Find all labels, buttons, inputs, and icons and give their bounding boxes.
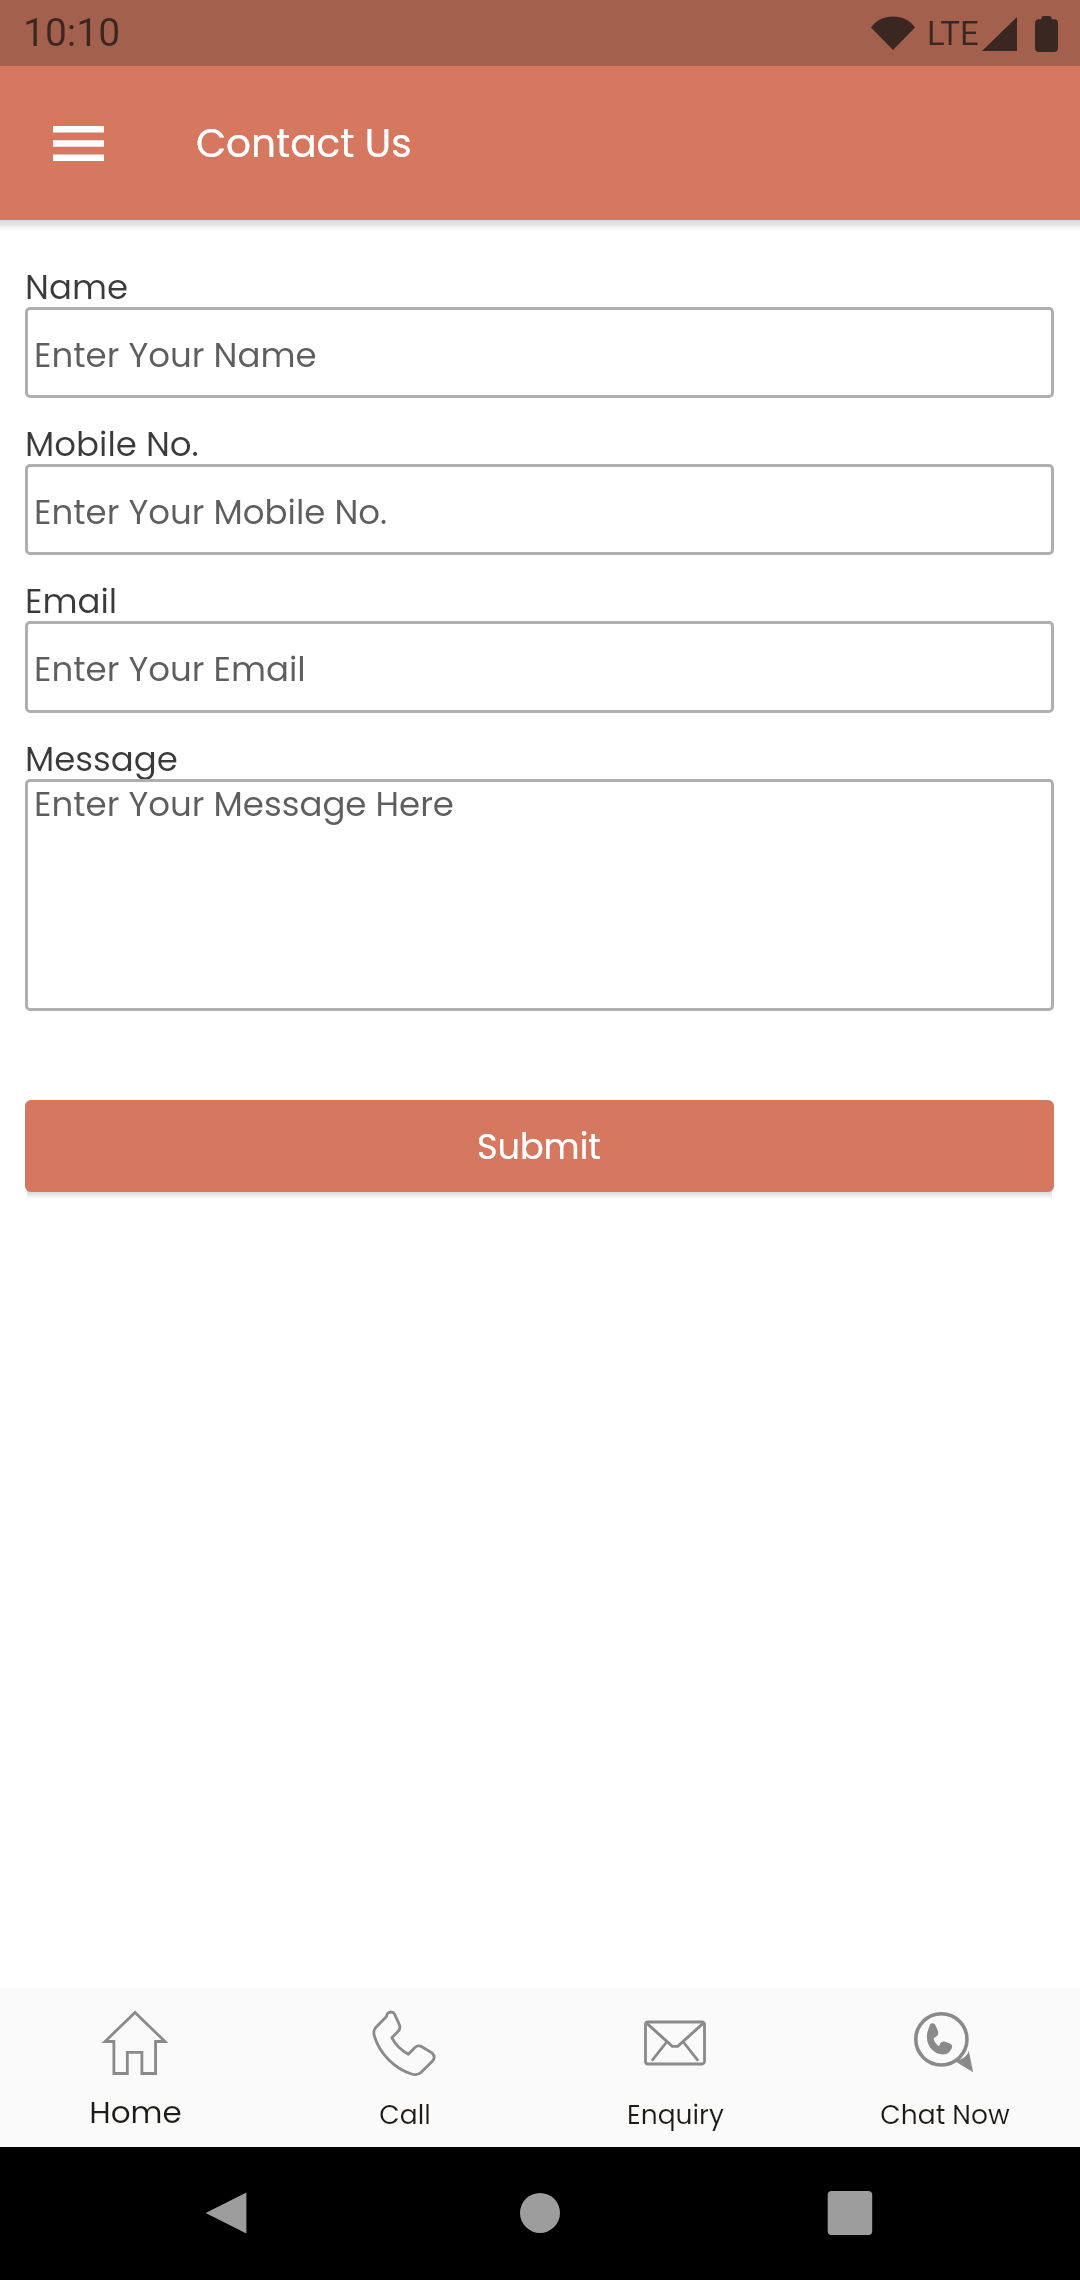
staticText: Contact Us xyxy=(196,116,412,171)
staticText: Submit xyxy=(477,1122,602,1171)
staticText: 10:10 xyxy=(23,10,121,56)
staticText: Call xyxy=(379,2096,431,2133)
button[interactable]: Submit xyxy=(25,1100,1054,1192)
button[interactable]: Home xyxy=(0,1988,270,2147)
staticText: Enter Your Email xyxy=(34,645,306,693)
button[interactable]: Open navigation drawer xyxy=(26,91,130,195)
staticText: Message xyxy=(25,735,178,779)
staticText: Enter Your Message Here xyxy=(34,780,454,828)
button[interactable]: Enter Your Email xyxy=(25,621,1054,713)
button[interactable]: Enter Your Message Here xyxy=(25,779,1054,1011)
button[interactable]: Chat Now xyxy=(810,1988,1080,2147)
staticText: Name xyxy=(25,263,128,307)
staticText: Enquiry xyxy=(627,2096,724,2133)
staticText: Enter Your Name xyxy=(34,331,317,379)
staticText: Chat Now xyxy=(880,2096,1010,2133)
staticText: Enter Your Mobile No. xyxy=(34,488,388,536)
button[interactable]: Enter Your Mobile No. xyxy=(25,464,1054,555)
staticText: Home xyxy=(89,2090,182,2133)
staticText: LTE xyxy=(927,14,979,53)
staticText: Email xyxy=(25,577,118,621)
button[interactable]: Call xyxy=(270,1988,540,2147)
button[interactable]: Enter Your Name xyxy=(25,307,1054,398)
button[interactable]: Enquiry xyxy=(540,1988,810,2147)
staticText: Mobile No. xyxy=(25,420,199,464)
